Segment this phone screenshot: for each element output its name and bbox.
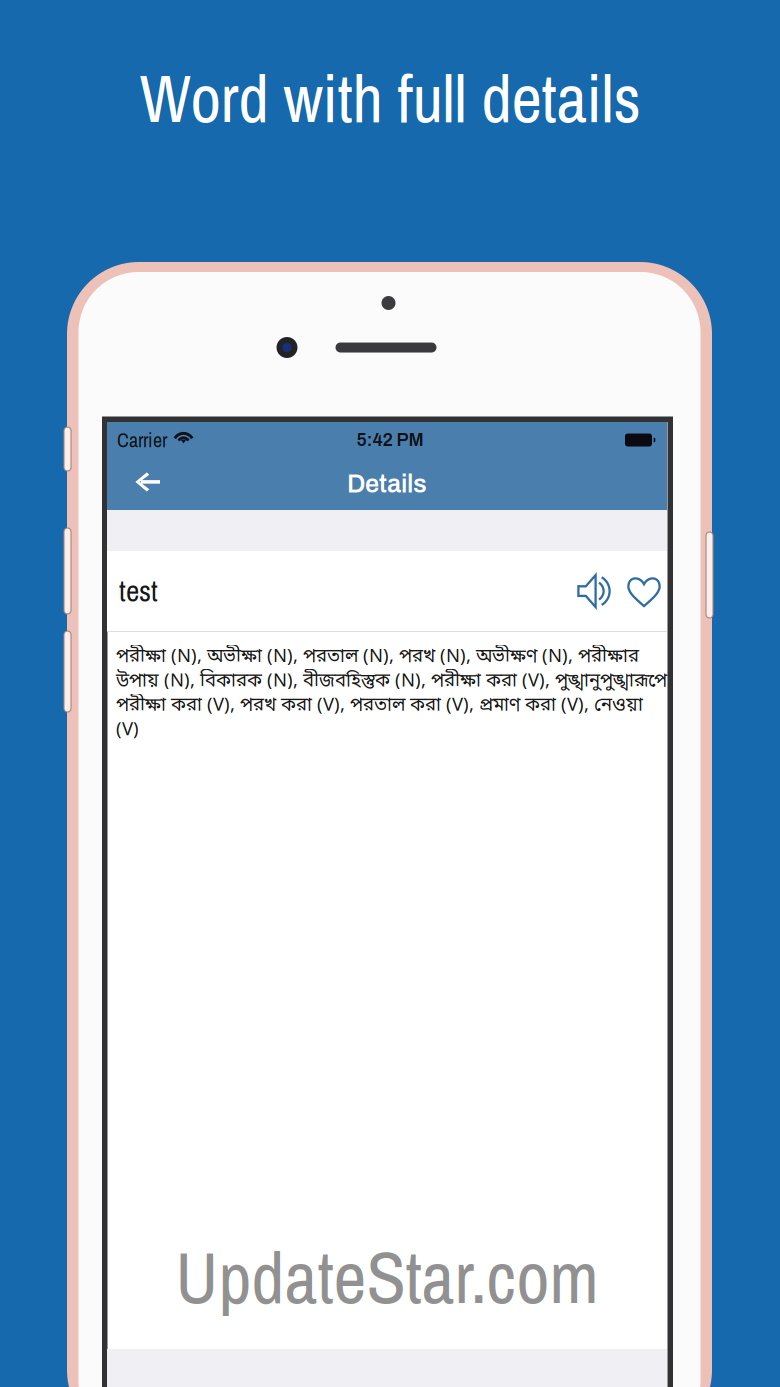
button[interactable]: Pronounce word <box>577 573 613 608</box>
staticText: 5:42 PM <box>356 430 423 450</box>
staticText: পরীক্ষা (N), অভীক্ষা (N), পরতাল (N), পরখ… <box>116 645 667 743</box>
staticText: Details <box>347 470 427 498</box>
staticText: test <box>119 571 158 611</box>
button[interactable]: test <box>107 551 667 631</box>
staticText: Word with full details <box>139 53 640 143</box>
button[interactable]: Back <box>107 458 176 510</box>
staticText: Carrier <box>117 426 167 453</box>
staticText: UpdateStar.com <box>175 1228 598 1325</box>
button[interactable]: Add to favourites <box>613 574 661 607</box>
